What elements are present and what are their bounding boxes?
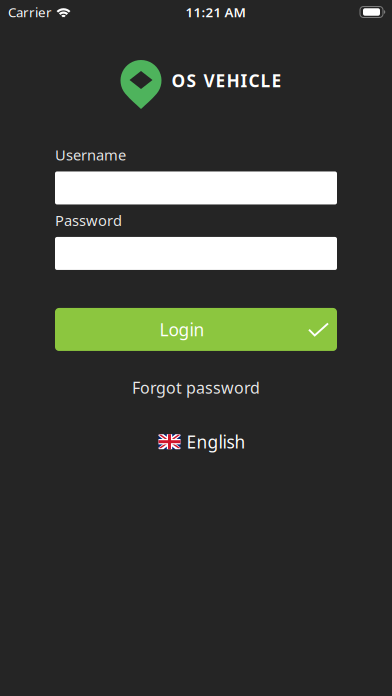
button[interactable]: Forgot password: [114, 369, 278, 406]
staticText: Carrier: [8, 3, 52, 21]
button[interactable]: Password: [55, 237, 337, 270]
staticText: Forgot password: [132, 377, 260, 398]
staticText: Username: [55, 145, 126, 164]
button[interactable]: Login: [55, 308, 337, 351]
staticText: OS VEHICLE: [171, 69, 281, 92]
staticText: Password: [55, 210, 122, 230]
button[interactable]: English: [144, 423, 259, 460]
staticText: English: [186, 430, 245, 453]
staticText: 11:21 AM: [185, 3, 245, 21]
staticText: Login: [159, 318, 204, 341]
